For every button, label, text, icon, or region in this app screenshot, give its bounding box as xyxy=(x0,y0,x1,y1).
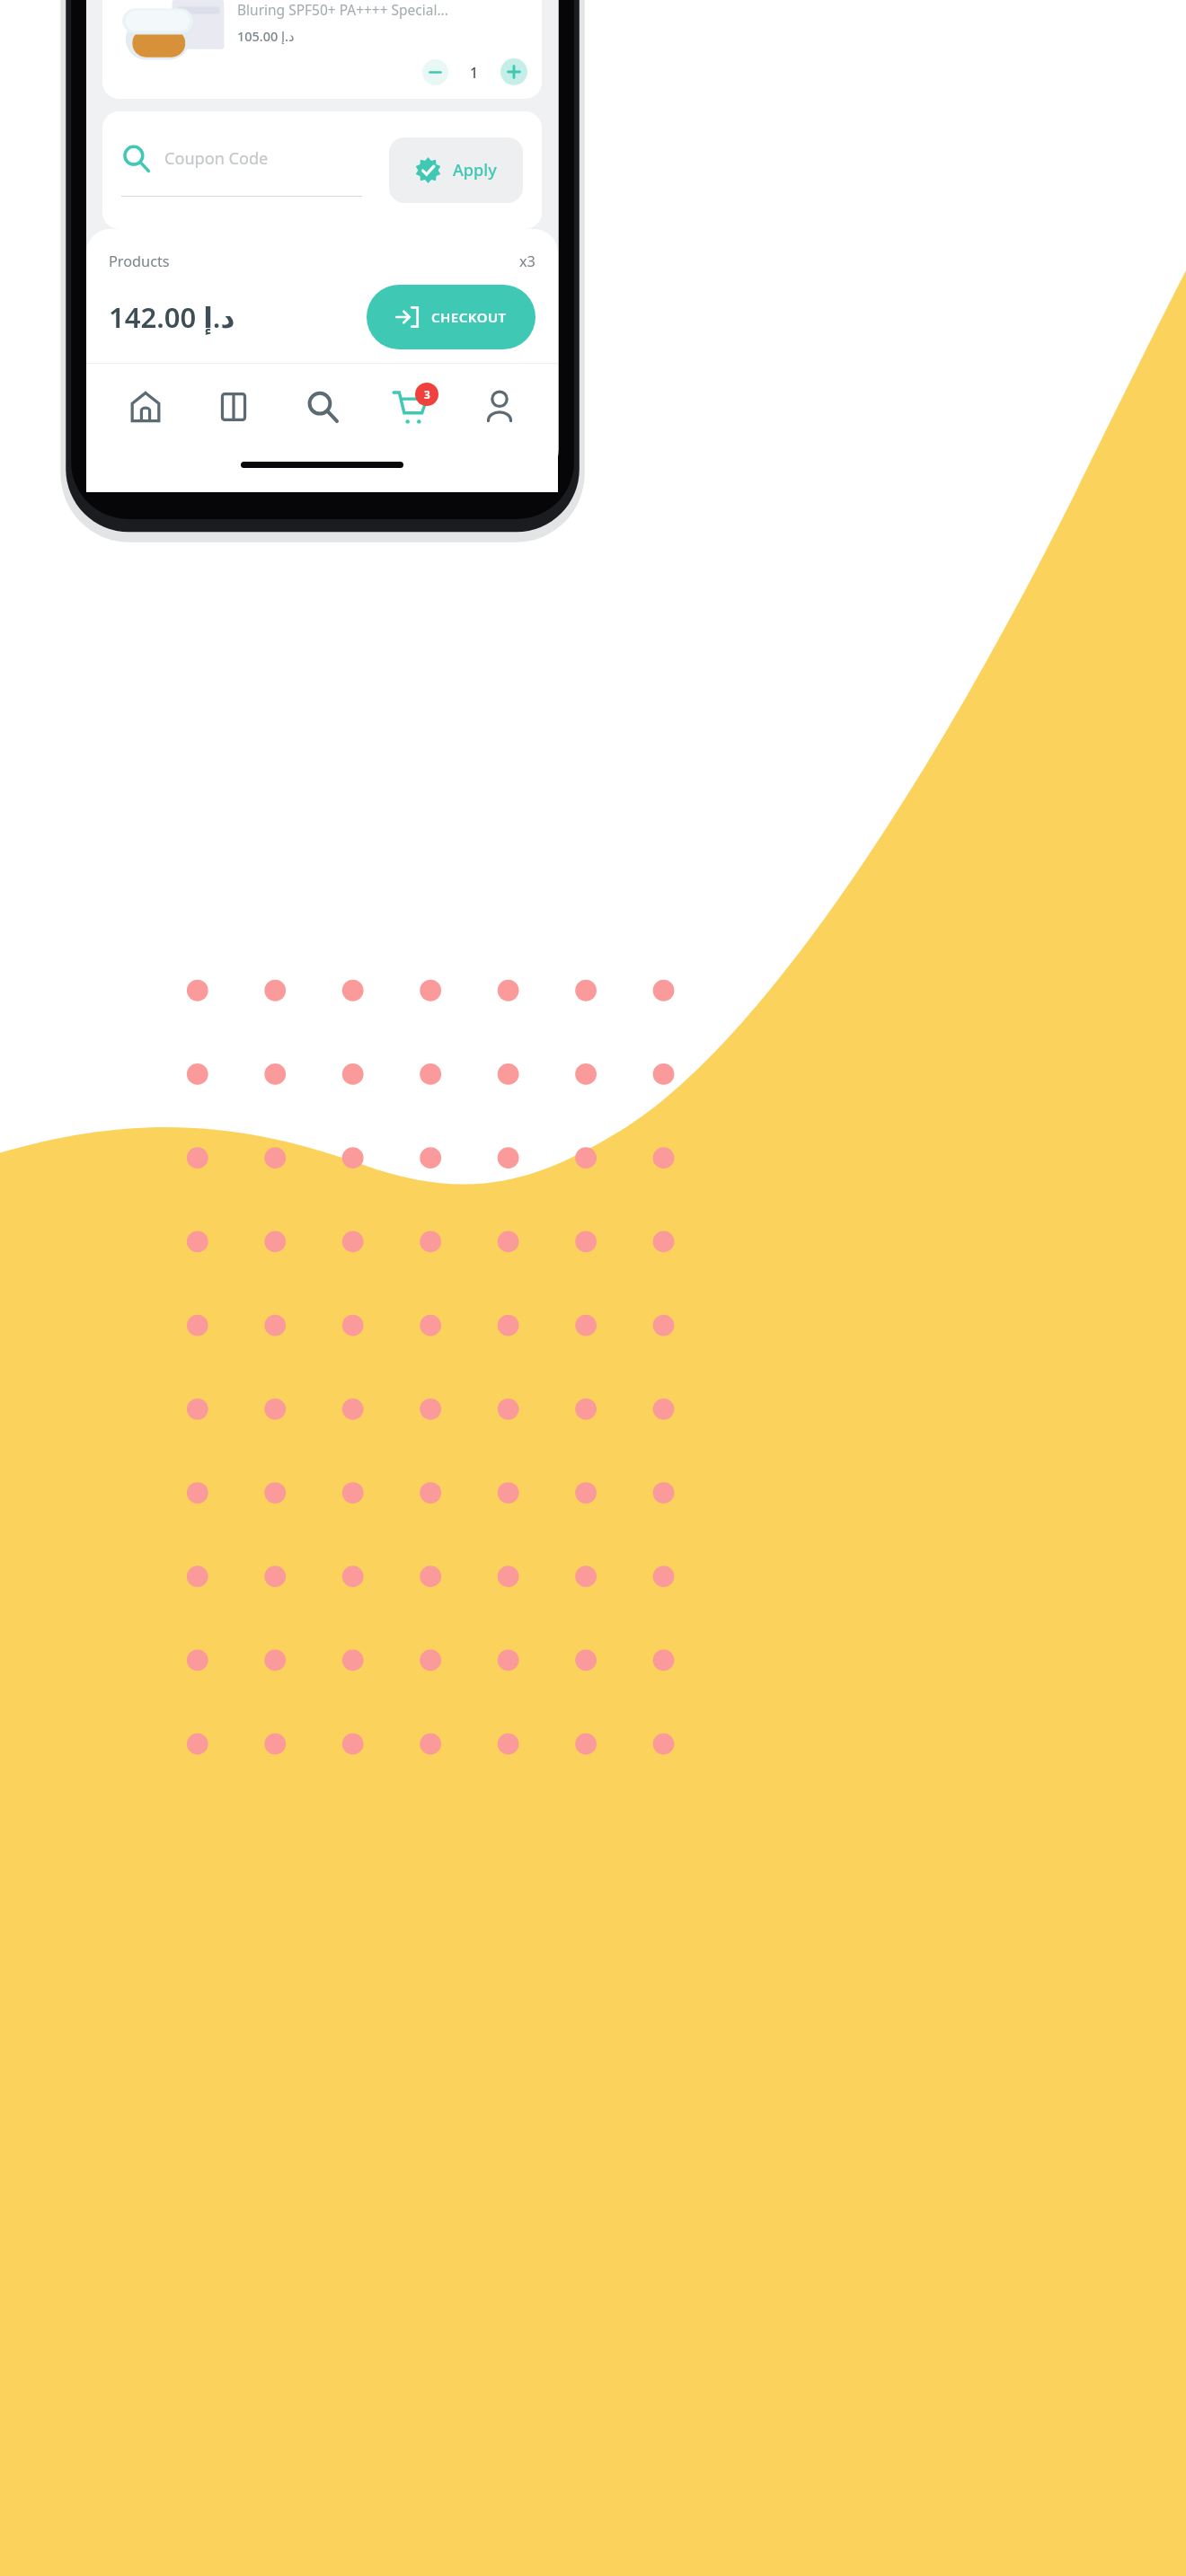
button[interactable]: Home xyxy=(116,377,175,437)
staticText: د.إ 105.00 xyxy=(237,28,295,46)
staticText: x3 xyxy=(519,251,535,271)
button[interactable]: Search coupon xyxy=(121,144,377,197)
staticText: 1 xyxy=(470,63,479,82)
staticText: Apply xyxy=(453,159,497,181)
staticText: Products xyxy=(109,251,170,271)
button[interactable]: Cart, 3 items xyxy=(381,377,440,437)
button[interactable]: Categories xyxy=(204,377,263,437)
button[interactable]: Increase quantity xyxy=(500,58,527,85)
button[interactable]: Bluring SPF50+ PA++++ Special... xyxy=(102,0,542,99)
staticText: Coupon Code xyxy=(164,147,269,170)
other: Search coupon xyxy=(121,144,151,173)
button[interactable]: Account xyxy=(470,377,529,437)
staticText: د.إ 142.00 xyxy=(109,298,235,336)
button[interactable]: Search xyxy=(293,377,352,437)
button[interactable]: Decrease quantity xyxy=(422,59,448,85)
button[interactable]: CHECKOUT xyxy=(367,285,535,349)
button[interactable]: Apply xyxy=(389,137,523,203)
staticText: Bluring SPF50+ PA++++ Special... xyxy=(237,0,448,19)
staticText: CHECKOUT xyxy=(431,308,507,326)
staticText: 3 xyxy=(424,387,430,401)
